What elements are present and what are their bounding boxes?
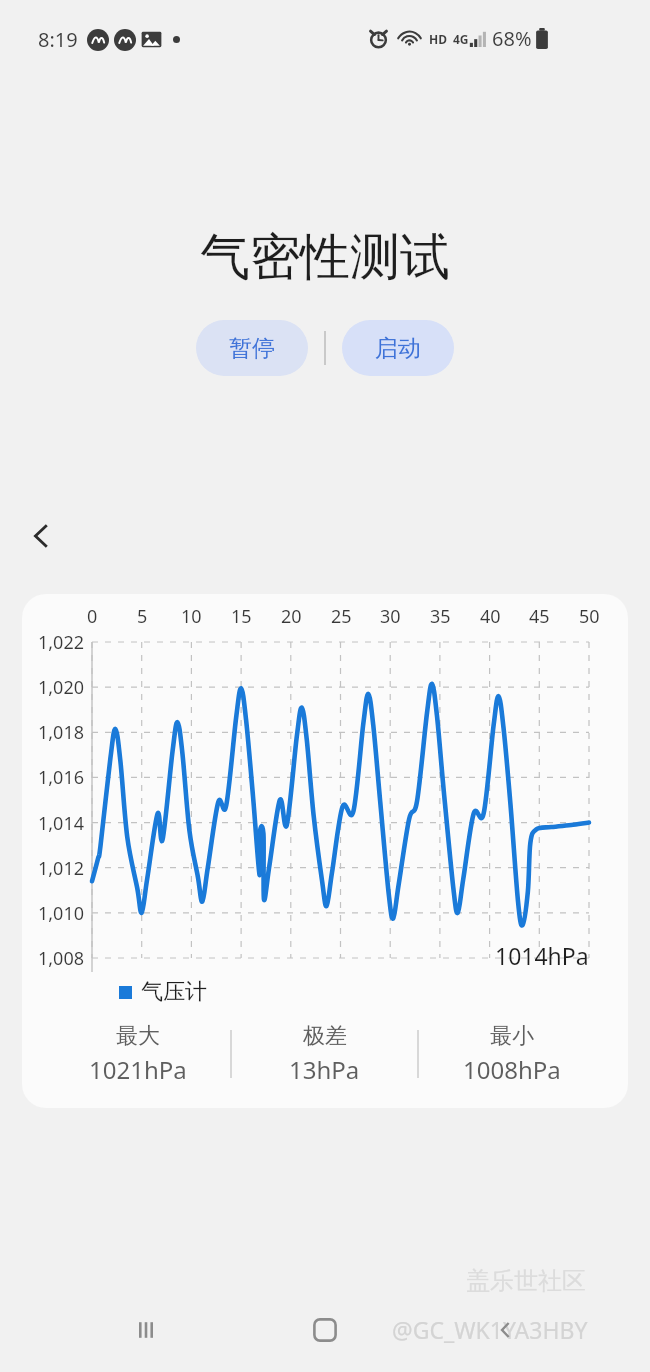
button[interactable]: Recent apps xyxy=(118,1302,174,1358)
staticText: 最大 xyxy=(116,1022,160,1050)
staticText: 启动 xyxy=(375,334,421,363)
button[interactable]: 最大 xyxy=(46,1022,230,1086)
staticText: 13hPa xyxy=(289,1053,360,1086)
staticText: 1008hPa xyxy=(463,1053,561,1086)
staticText: 1,010 xyxy=(38,901,85,926)
staticText: 40 xyxy=(480,604,501,629)
staticText: 1014hPa xyxy=(495,940,589,971)
staticText: 20 xyxy=(281,604,302,629)
staticText: 15 xyxy=(231,604,252,629)
staticText: @GC_WK1YA3HBY xyxy=(392,1314,588,1345)
staticText: 5 xyxy=(137,604,148,629)
staticText: 4G xyxy=(453,31,469,47)
staticText: 1,018 xyxy=(38,720,85,745)
staticText: 45 xyxy=(529,604,550,629)
staticText: 35 xyxy=(430,604,451,629)
staticText: 1,016 xyxy=(38,765,85,790)
button[interactable]: 启动 xyxy=(342,320,454,376)
button[interactable]: Back xyxy=(478,1302,534,1358)
staticText: 25 xyxy=(331,604,352,629)
staticText: 0 xyxy=(87,604,98,629)
button[interactable]: 极差 xyxy=(232,1022,417,1086)
staticText: 盖乐世社区 xyxy=(466,1266,586,1296)
staticText: 1,008 xyxy=(38,946,85,971)
button[interactable]: 最小 xyxy=(419,1022,604,1086)
staticText: 30 xyxy=(380,604,401,629)
button[interactable]: 暂停 xyxy=(196,320,308,376)
staticText: 8:19 xyxy=(38,26,78,53)
staticText: 1,022 xyxy=(38,630,85,655)
staticText: 68% xyxy=(492,25,532,52)
staticText: 1,012 xyxy=(38,856,85,881)
staticText: 1021hPa xyxy=(89,1053,187,1086)
button[interactable]: Home xyxy=(297,1302,353,1358)
staticText: 气密性测试 xyxy=(200,226,450,289)
staticText: 最小 xyxy=(490,1022,534,1050)
staticText: 气压计 xyxy=(141,978,207,1006)
staticText: 50 xyxy=(579,604,600,629)
staticText: HD xyxy=(429,31,447,47)
staticText: 1,020 xyxy=(38,675,85,700)
button[interactable]: Back xyxy=(14,508,70,564)
staticText: 10 xyxy=(181,604,202,629)
staticText: 暂停 xyxy=(229,334,275,363)
staticText: 极差 xyxy=(303,1022,347,1050)
staticText: 1,014 xyxy=(38,811,85,836)
